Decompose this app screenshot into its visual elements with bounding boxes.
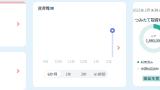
button[interactable]: 全期間 — [92, 71, 107, 77]
staticText: 資産推移 — [38, 5, 54, 11]
staticText: 全期間 — [93, 71, 105, 77]
staticText: 合計 — [150, 34, 156, 38]
staticText: 10月 — [54, 59, 61, 64]
staticText: 3年 — [81, 71, 87, 77]
staticText: 12月 — [80, 59, 87, 64]
button[interactable]: 6か月 — [45, 71, 60, 77]
staticText: 2月 — [106, 59, 111, 64]
button[interactable]: 前のカード 2 — [0, 52, 26, 90]
staticText: 1月 — [93, 59, 98, 64]
staticText: 9月 — [43, 59, 48, 64]
button[interactable]: 1年 — [60, 71, 76, 77]
staticText: 1年 — [65, 71, 71, 77]
staticText: 6か月 — [48, 71, 58, 77]
button[interactable]: 3年 — [76, 71, 92, 77]
staticText: 利用済み — [141, 60, 153, 64]
staticText: 11月 — [67, 59, 74, 64]
button[interactable]: 2025年2月末時点 — [133, 2, 160, 86]
button[interactable]: 前のカード — [0, 1, 26, 46]
staticText: 商品を買う — [143, 76, 160, 81]
staticText: 2025年2月末時点 — [132, 8, 160, 13]
button[interactable]: 商品を買う — [142, 76, 160, 81]
staticText: 非課税投資枠 — [141, 67, 159, 71]
staticText: 1,880,000 — [145, 38, 160, 43]
staticText: つみたて投資枠 — [134, 17, 160, 23]
